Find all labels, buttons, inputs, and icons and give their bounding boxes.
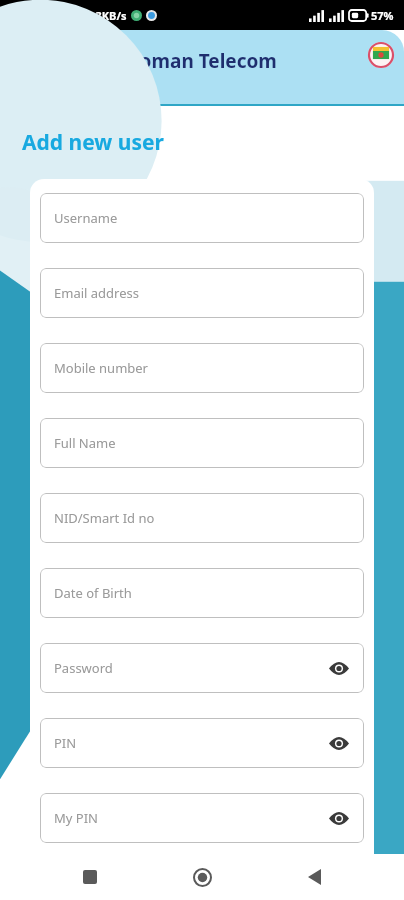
staticText: Date of Birth (54, 584, 132, 602)
button[interactable]: Username (40, 193, 364, 243)
button[interactable]: Toggle visibility (324, 728, 354, 758)
button[interactable]: Home (180, 855, 224, 899)
button[interactable]: NID/Smart Id no (40, 493, 364, 543)
button[interactable]: Full Name (40, 418, 364, 468)
staticText: Email address (54, 284, 139, 302)
staticText: My PIN (54, 809, 98, 827)
staticText: NID/Smart Id no (54, 509, 155, 527)
button[interactable]: Back (292, 855, 336, 899)
button[interactable]: My PIN (40, 793, 364, 843)
button[interactable]: Password (40, 643, 364, 693)
button[interactable]: Profile logo (366, 40, 396, 70)
button[interactable]: Date of Birth (40, 568, 364, 618)
button[interactable]: Mobile number (40, 343, 364, 393)
staticText: 57% (371, 8, 394, 23)
staticText: Roman Telecom (127, 48, 277, 74)
button[interactable]: Toggle visibility (324, 803, 354, 833)
staticText: Mobile number (54, 359, 148, 377)
button[interactable]: Email address (40, 268, 364, 318)
staticText: Username (54, 209, 118, 227)
staticText: 10:38 PM | 1.3KB/s (26, 8, 127, 23)
button[interactable]: Toggle visibility (324, 653, 354, 683)
button[interactable]: Recent apps (68, 855, 112, 899)
staticText: Full Name (54, 434, 116, 452)
staticText: PIN (54, 734, 77, 752)
staticText: Add new user (22, 128, 164, 157)
button[interactable]: PIN (40, 718, 364, 768)
staticText: Password (54, 659, 113, 677)
